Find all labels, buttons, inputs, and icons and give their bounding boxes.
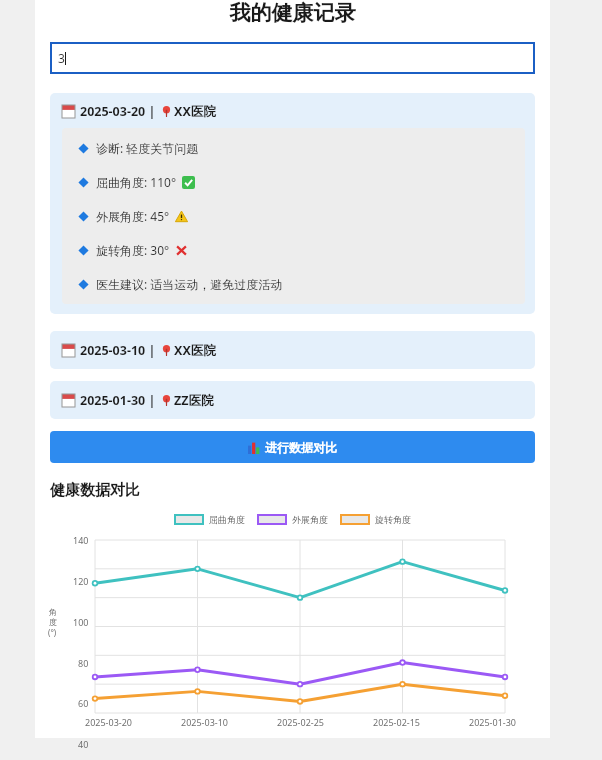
staticText: 度 [49, 617, 57, 627]
staticText: 屈曲角度 [209, 514, 245, 525]
staticText: 屈曲角度: 110° [96, 174, 177, 190]
staticText: 角 [49, 607, 57, 617]
staticText: 80 [78, 657, 89, 669]
button[interactable]: 2025-01-30 | [50, 381, 535, 419]
staticText: 2025-02-15 [373, 716, 420, 728]
staticText: 2025-01-30 | [80, 392, 156, 409]
staticText: 进行数据对比 [265, 440, 337, 455]
staticText: 2025-02-25 [277, 716, 324, 728]
staticText: 100 [73, 616, 89, 628]
staticText: 2025-03-20 [85, 716, 132, 728]
staticText: 2025-01-30 [469, 716, 516, 728]
staticText: ZZ医院 [174, 392, 214, 409]
button[interactable]: 3 [50, 42, 535, 74]
staticText: 旋转角度: 30° [96, 242, 170, 258]
staticText: 外展角度: 45° [96, 208, 170, 224]
staticText: 旋转角度 [375, 514, 411, 525]
staticText: XX医院 [174, 103, 216, 120]
staticText: 外展角度 [292, 514, 328, 525]
staticText: 60 [78, 697, 89, 709]
staticText: 3 [58, 50, 65, 66]
button[interactable]: 2025-03-10 | [50, 331, 535, 369]
staticText: 诊断: 轻度关节问题 [96, 140, 199, 156]
staticText: 2025-03-10 | [80, 342, 156, 359]
staticText: (°) [48, 627, 57, 638]
staticText: 140 [73, 534, 89, 546]
staticText: 2025-03-20 | [80, 103, 156, 120]
staticText: 2025-03-10 [181, 716, 228, 728]
staticText: 我的健康记录 [35, 0, 550, 26]
button[interactable]: 2025-03-20 | [50, 93, 535, 314]
staticText: XX医院 [174, 342, 216, 359]
staticText: 健康数据对比 [50, 481, 140, 500]
staticText: 40 [78, 738, 89, 750]
staticText: 120 [73, 575, 89, 587]
staticText: 医生建议: 适当运动，避免过度活动 [96, 276, 283, 292]
button[interactable]: 进行数据对比 [50, 431, 535, 463]
